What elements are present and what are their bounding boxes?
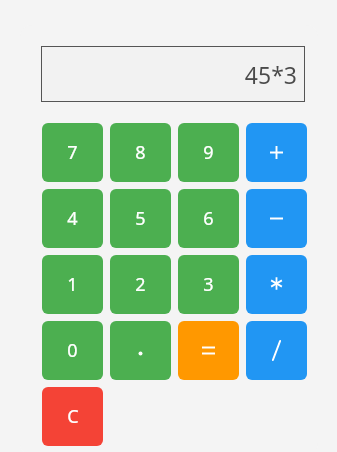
button[interactable]: 2 [110,255,171,314]
staticText: 7 [67,140,78,165]
staticText: 0 [67,338,78,363]
button[interactable]: 8 [110,123,171,182]
staticText: 9 [203,140,214,165]
button[interactable]: 1 [42,255,103,314]
button[interactable]: Plus [246,123,307,182]
staticText: 45*3 [244,59,297,90]
button[interactable]: Divide [246,321,307,380]
staticText: 6 [203,206,214,231]
button[interactable]: C [42,387,103,446]
staticText: C [67,404,79,429]
button[interactable]: 4 [42,189,103,248]
staticText: 3 [203,272,214,297]
button[interactable]: Minus [246,189,307,248]
button[interactable]: 0 [42,321,103,380]
button[interactable]: 7 [42,123,103,182]
button[interactable]: 6 [178,189,239,248]
button[interactable]: 45*3 [41,46,305,102]
staticText: 4 [67,206,78,231]
staticText: 8 [135,140,146,165]
staticText: 1 [67,272,78,297]
button[interactable]: 3 [178,255,239,314]
button[interactable]: Multiply [246,255,307,314]
button[interactable]: 5 [110,189,171,248]
button[interactable]: Equals [178,321,239,380]
button[interactable]: 9 [178,123,239,182]
staticText: 2 [135,272,146,297]
button[interactable]: Decimal point [110,321,171,380]
staticText: 5 [135,206,146,231]
